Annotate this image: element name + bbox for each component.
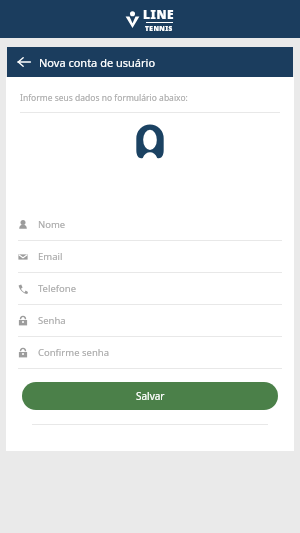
staticText: Informe seus dados no formulário abaixo:: [20, 92, 188, 104]
button[interactable]: Salvar: [22, 382, 278, 410]
staticText: TENNIS: [145, 24, 173, 33]
staticText: Senha: [38, 314, 66, 327]
staticText: Nome: [38, 218, 66, 231]
button[interactable]: Profile photo: [132, 123, 168, 159]
staticText: LINE: [143, 6, 175, 22]
staticText: Salvar: [136, 389, 165, 403]
button[interactable]: Senha: [6, 305, 294, 337]
button[interactable]: Confirme senha: [6, 337, 294, 369]
staticText: Confirme senha: [38, 346, 109, 359]
staticText: Nova conta de usuário: [39, 55, 156, 70]
button[interactable]: Back: [7, 47, 293, 77]
staticText: Telefone: [38, 282, 77, 295]
button[interactable]: Back: [17, 55, 31, 69]
button[interactable]: Nome: [6, 209, 294, 241]
button[interactable]: Telefone: [6, 273, 294, 305]
button[interactable]: Email: [6, 241, 294, 273]
staticText: Email: [38, 250, 63, 263]
